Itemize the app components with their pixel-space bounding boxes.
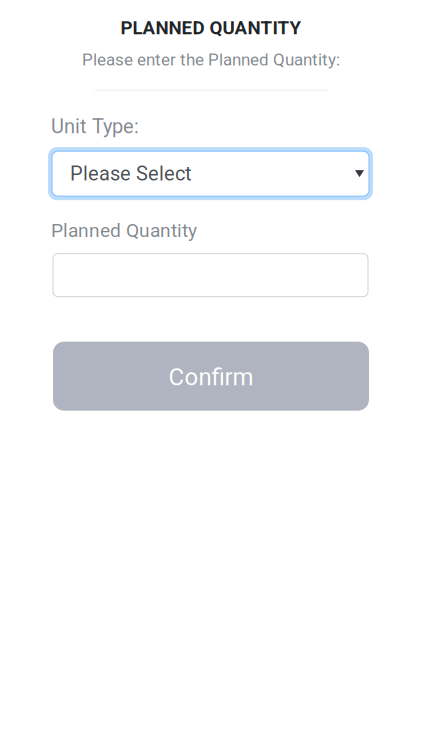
button[interactable]: Confirm [53,342,369,411]
staticText: Please Select [70,162,192,185]
button[interactable]: Unit Type, Please Select [48,147,373,200]
staticText: Please enter the Planned Quantity: [82,50,340,70]
button[interactable]: Planned Quantity [53,254,368,297]
staticText: Planned Quantity [51,219,197,242]
staticText: PLANNED QUANTITY [120,17,301,39]
staticText: Unit Type: [51,115,139,138]
staticText: Confirm [168,363,253,391]
